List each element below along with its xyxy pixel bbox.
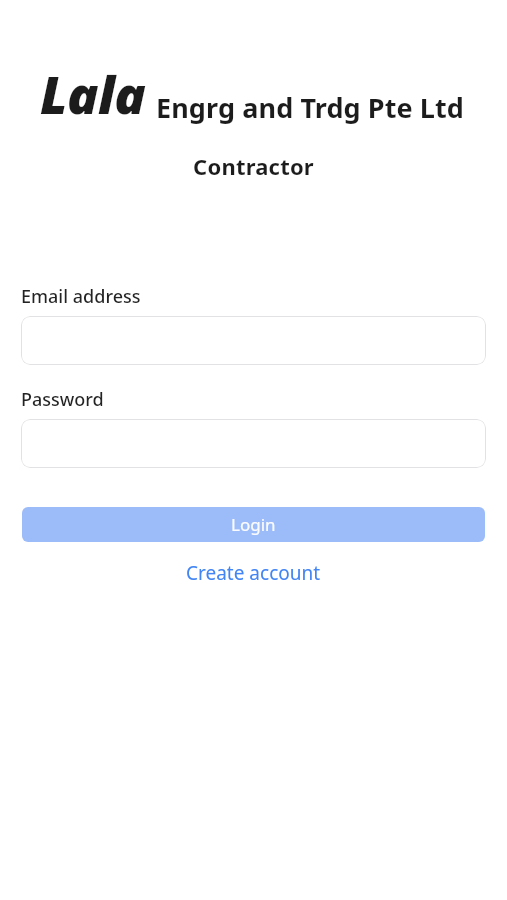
staticText: Password — [21, 387, 104, 412]
staticText: Lala — [40, 58, 146, 129]
staticText: Engrg and Trdg Pte Ltd — [156, 89, 465, 126]
staticText: Email address — [21, 284, 141, 309]
button[interactable]: Login — [22, 507, 485, 542]
staticText: Create account — [186, 560, 321, 586]
staticText: Contractor — [0, 151, 507, 181]
button[interactable]: Password input — [21, 419, 486, 468]
button[interactable]: Email address input — [21, 316, 486, 365]
staticText: Login — [231, 513, 276, 536]
button[interactable]: Create account — [0, 556, 507, 590]
